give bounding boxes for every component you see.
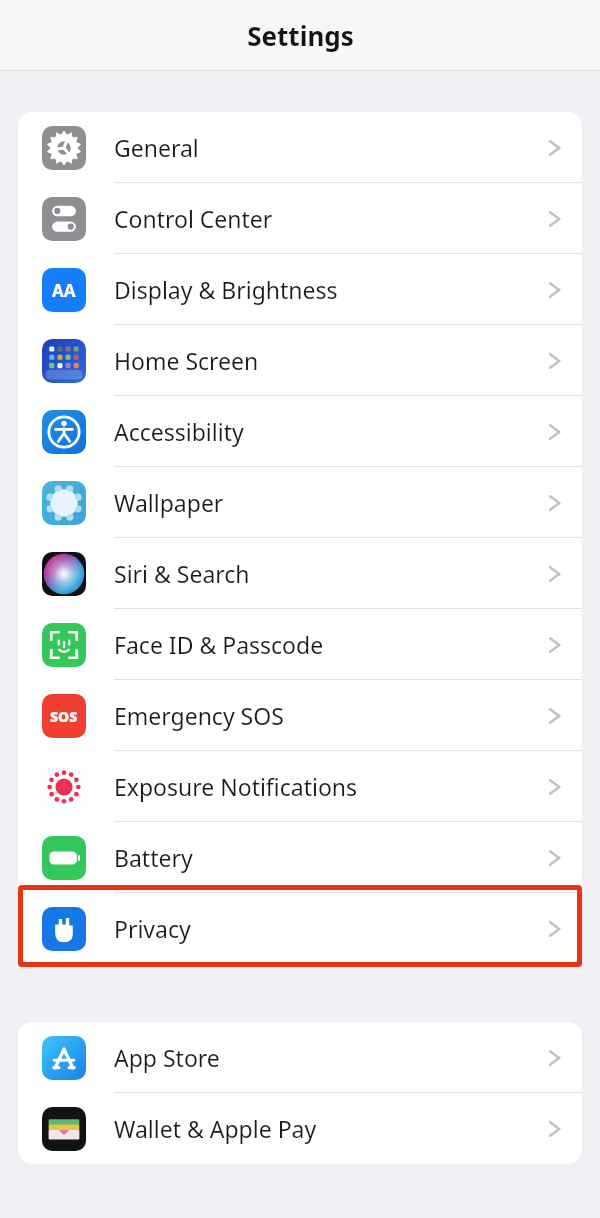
staticText: Emergency SOS	[114, 700, 548, 731]
staticText: Wallpaper	[114, 487, 548, 518]
staticText: Wallet & Apple Pay	[114, 1113, 548, 1144]
button[interactable]: Face ID & Passcode	[18, 609, 582, 680]
staticText: Home Screen	[114, 345, 548, 376]
staticText: Settings	[247, 18, 354, 53]
staticText: Battery	[114, 842, 548, 873]
staticText: Accessibility	[114, 416, 548, 447]
button[interactable]: General	[18, 112, 582, 183]
staticText: App Store	[114, 1042, 548, 1073]
button[interactable]: App Store	[18, 1022, 582, 1093]
button[interactable]: Wallet & Apple Pay	[18, 1093, 582, 1164]
staticText: Privacy	[114, 913, 548, 944]
button[interactable]: AA	[18, 254, 582, 325]
button[interactable]: Wallpaper	[18, 467, 582, 538]
staticText: Exposure Notifications	[114, 771, 548, 802]
button[interactable]: Exposure Notifications	[18, 751, 582, 822]
button[interactable]: Home Screen	[18, 325, 582, 396]
staticText: Display & Brightness	[114, 274, 548, 305]
staticText: AA	[52, 279, 76, 302]
staticText: SOS	[50, 707, 78, 726]
button[interactable]: Accessibility	[18, 396, 582, 467]
button[interactable]: Privacy	[18, 893, 582, 964]
button[interactable]: Siri & Search	[18, 538, 582, 609]
button[interactable]: SOS	[18, 680, 582, 751]
staticText: Siri & Search	[114, 558, 548, 589]
button[interactable]: Control Center	[18, 183, 582, 254]
staticText: General	[114, 132, 548, 163]
staticText: Control Center	[114, 203, 548, 234]
staticText: Face ID & Passcode	[114, 629, 548, 660]
button[interactable]: Battery	[18, 822, 582, 893]
